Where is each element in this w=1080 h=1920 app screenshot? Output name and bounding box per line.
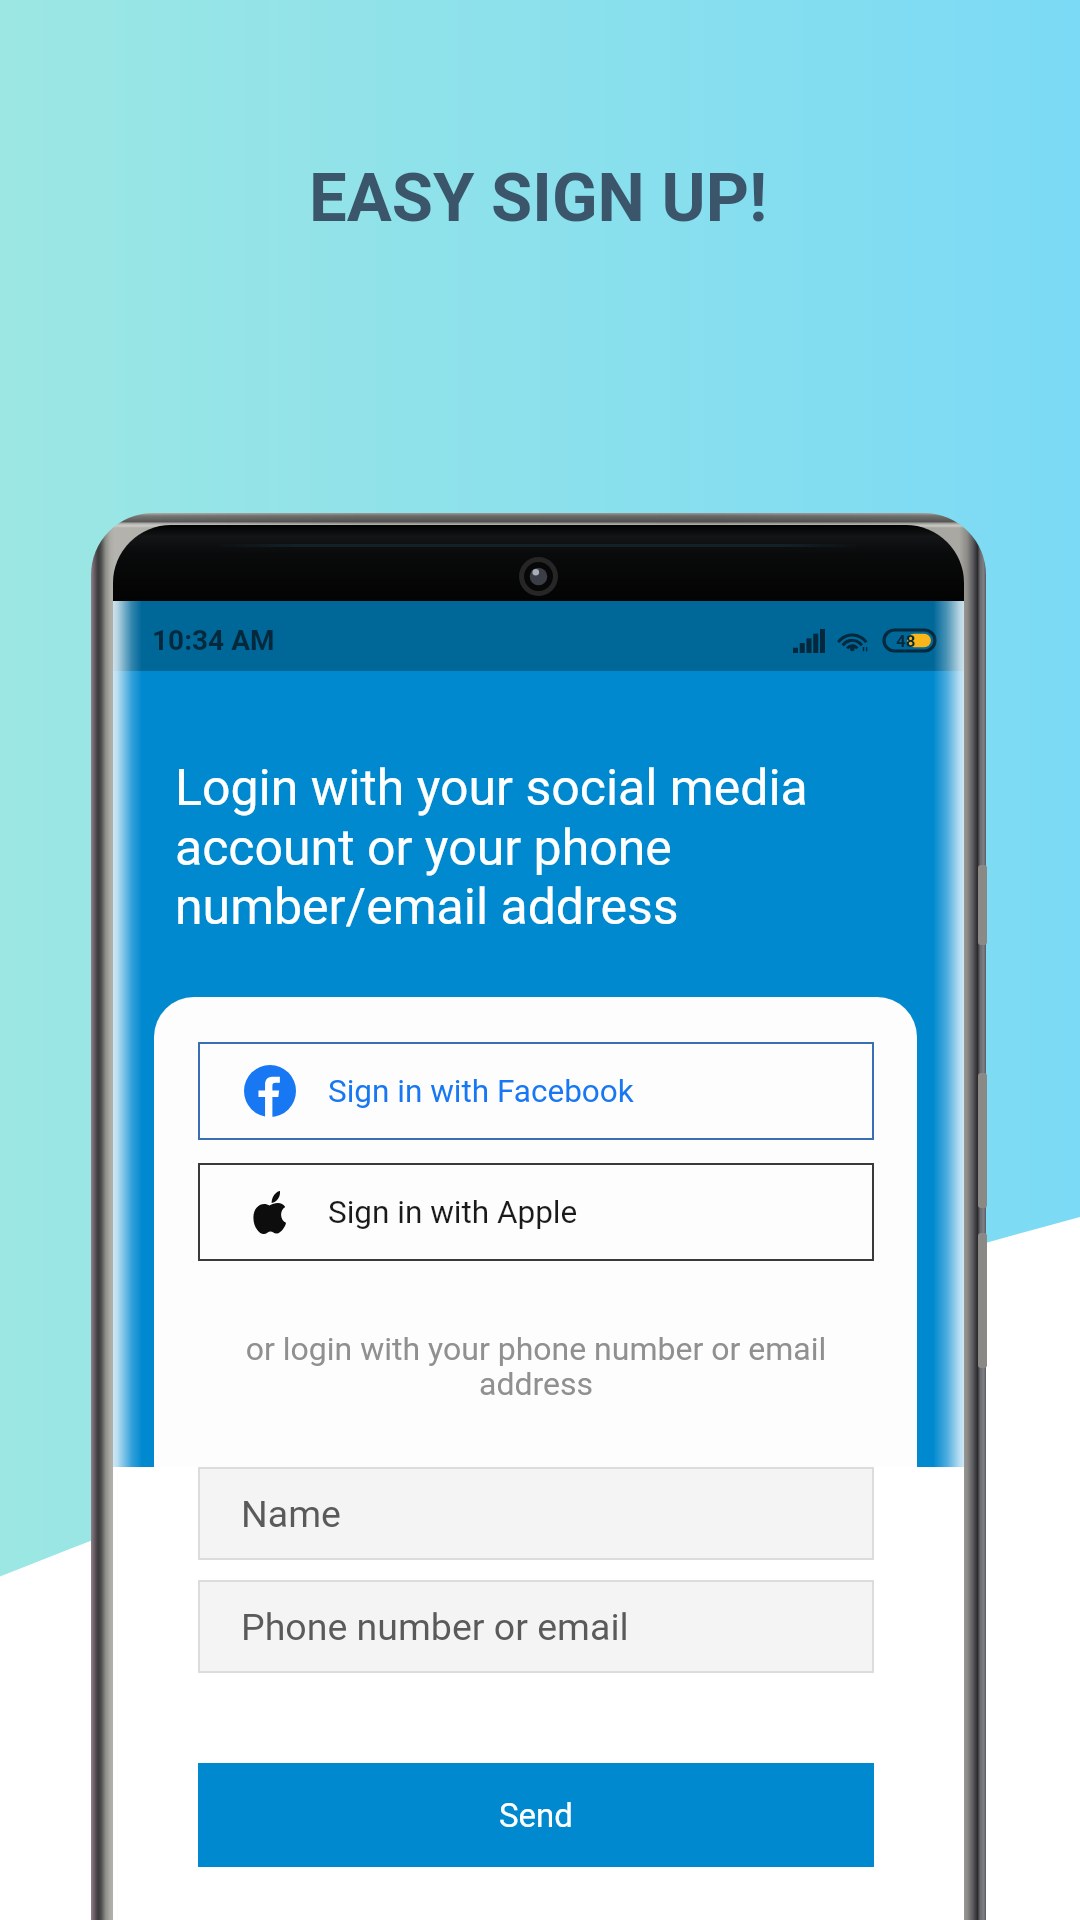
other: Battery 48 percent [884,630,935,651]
other: Wi-Fi connected [838,628,869,653]
other: Mobile signal strength [793,629,825,653]
staticText: 10:34 AM [152,624,275,657]
staticText: or login with your phone number or email… [174,1330,898,1403]
staticText: Sign in with Apple [328,1194,578,1231]
button[interactable]: Sign in with Facebook [198,1042,874,1140]
button[interactable]: Send [198,1763,874,1867]
staticText: 48 [896,631,916,651]
button[interactable]: Name [198,1467,874,1560]
staticText: Name [241,1492,341,1536]
button[interactable]: Phone number or email [198,1580,874,1673]
staticText: Phone number or email [241,1605,629,1649]
button[interactable]: Sign in with Apple [198,1163,874,1261]
staticText: Sign in with Facebook [328,1073,634,1110]
staticText: Login with your social media account or … [175,759,808,936]
staticText: Send [499,1796,573,1835]
staticText: EASY SIGN UP! [309,159,768,238]
